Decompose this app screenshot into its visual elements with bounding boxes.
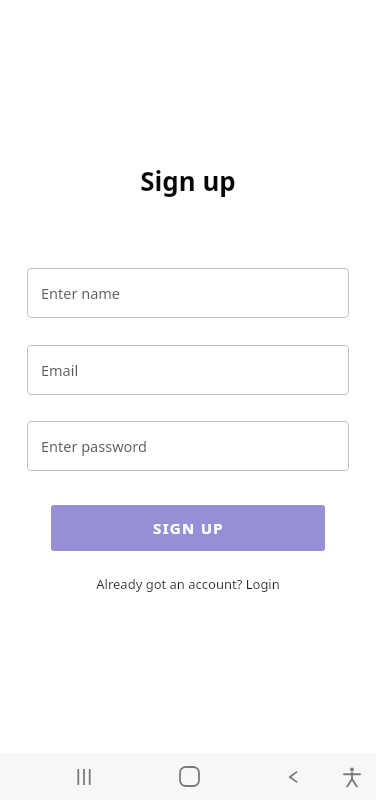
staticText: SIGN UP [153, 518, 224, 538]
button[interactable]: Back [269, 753, 317, 800]
button[interactable]: Enter password [27, 421, 349, 471]
button[interactable]: Recent apps [60, 753, 108, 800]
staticText: Enter name [41, 283, 121, 303]
button[interactable]: Already got an account? Login [88, 573, 288, 595]
button[interactable]: Accessibility [328, 753, 376, 800]
staticText: Sign up [140, 163, 236, 198]
button[interactable]: Email [27, 345, 349, 395]
staticText: Enter password [41, 436, 147, 456]
button[interactable]: Enter name [27, 268, 349, 318]
button[interactable]: SIGN UP [51, 505, 325, 551]
button[interactable]: Home [165, 753, 213, 800]
staticText: Email [41, 360, 79, 380]
staticText: Already got an account? Login [96, 575, 280, 593]
